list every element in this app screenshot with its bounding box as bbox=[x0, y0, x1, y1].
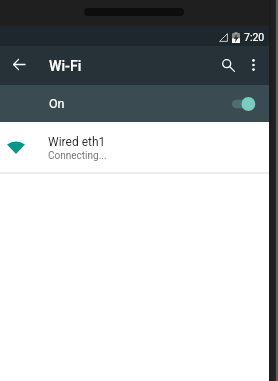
button[interactable]: More options bbox=[238, 49, 269, 80]
staticText: Wi-Fi bbox=[49, 58, 82, 75]
staticText: Wired eth1 bbox=[48, 135, 106, 149]
staticText: 7:20 bbox=[244, 31, 265, 43]
button[interactable]: Search bbox=[211, 48, 245, 82]
button[interactable]: On bbox=[0, 85, 269, 122]
staticText: Connecting... bbox=[48, 150, 107, 162]
button[interactable]: Wired eth1 bbox=[0, 122, 269, 172]
button[interactable]: Navigate up bbox=[1, 47, 36, 82]
staticText: On bbox=[49, 96, 65, 111]
